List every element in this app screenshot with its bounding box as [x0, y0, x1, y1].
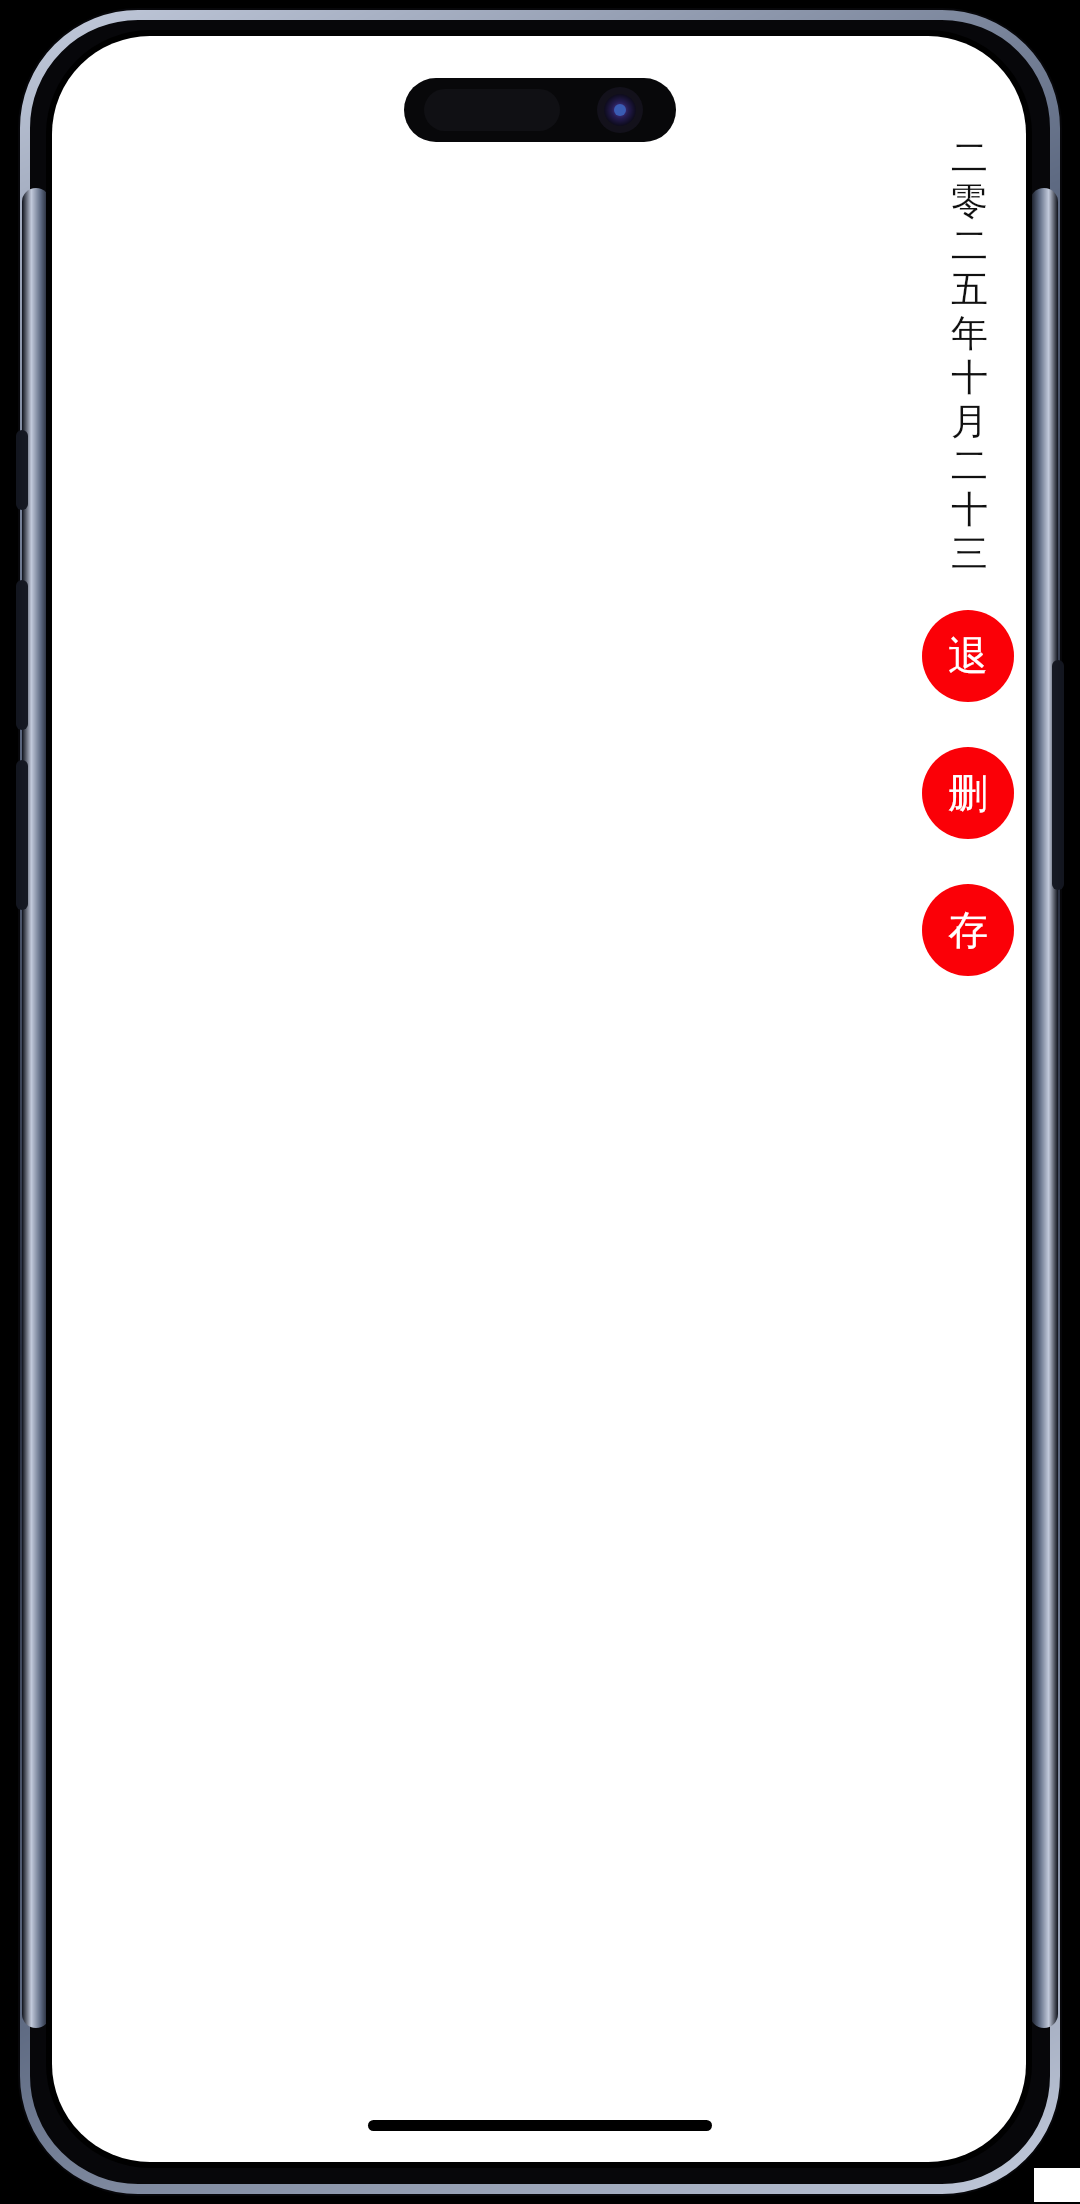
- staticText: 月: [951, 398, 988, 442]
- button[interactable]: Delete: [922, 747, 1014, 839]
- staticText: 三: [951, 530, 988, 574]
- staticText: 十: [951, 354, 988, 398]
- staticText: 二: [951, 134, 988, 178]
- staticText: 二: [951, 442, 988, 486]
- staticText: 二: [951, 222, 988, 266]
- staticText: 五: [951, 266, 988, 310]
- staticText: 存: [948, 905, 988, 955]
- staticText: 十: [951, 486, 988, 530]
- staticText: 年: [951, 310, 988, 354]
- button[interactable]: Exit: [922, 610, 1014, 702]
- staticText: 零: [951, 178, 988, 222]
- staticText: 删: [948, 768, 988, 818]
- button[interactable]: Save: [922, 884, 1014, 976]
- staticText: 退: [948, 631, 988, 681]
